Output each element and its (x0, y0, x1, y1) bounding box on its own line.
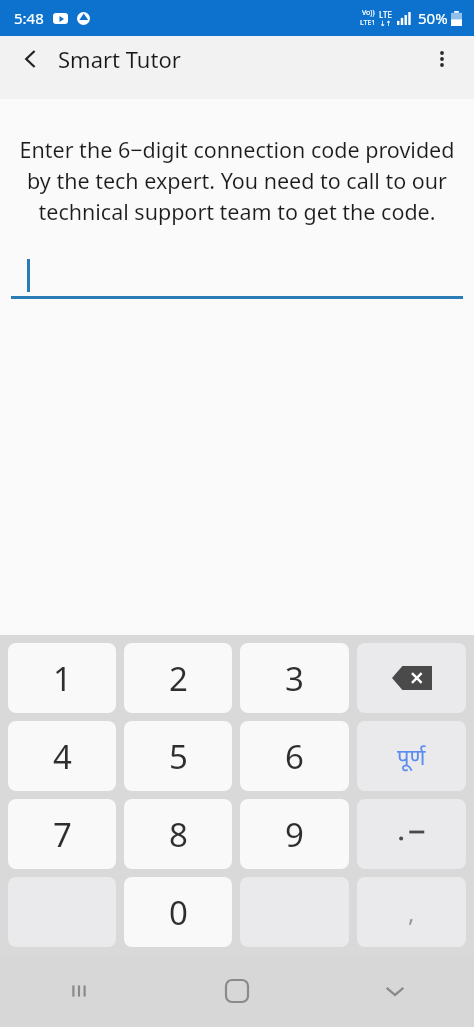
staticText: 1 (53, 656, 72, 701)
button[interactable] (11, 251, 463, 299)
staticText: 50% (418, 8, 448, 28)
button[interactable]: पूर्ण (357, 721, 466, 791)
staticText: LTE (379, 9, 392, 20)
staticText: LTE1 (360, 18, 376, 28)
staticText: ↓↑ (380, 20, 392, 28)
staticText: Vo)) (362, 8, 375, 18)
staticText: 5:48 (14, 8, 44, 28)
button[interactable]: 9 (240, 799, 349, 869)
staticText: पूर्ण (397, 741, 426, 771)
button[interactable]: More options (420, 37, 464, 81)
button[interactable]: Recent apps (0, 955, 158, 1027)
staticText: 4 (53, 734, 72, 779)
button[interactable]: Back (8, 36, 54, 82)
staticText: Enter the 6−digit connection code provid… (11, 135, 463, 227)
button[interactable]: 5 (124, 721, 232, 791)
staticText: 0 (169, 890, 188, 935)
staticText: 5 (169, 734, 188, 779)
button[interactable]: Hide keyboard (316, 955, 474, 1027)
staticText: 7 (53, 812, 72, 857)
staticText: 9 (285, 812, 304, 857)
button[interactable]: 1 (8, 643, 116, 713)
staticText: 8 (169, 812, 188, 857)
button[interactable]: 7 (8, 799, 116, 869)
button[interactable]: 3 (240, 643, 349, 713)
button[interactable]: 8 (124, 799, 232, 869)
button[interactable]: 0 (124, 877, 232, 947)
button[interactable]: 4 (8, 721, 116, 791)
button[interactable]: Backspace (357, 643, 466, 713)
staticText: 2 (169, 656, 188, 701)
button[interactable]: 2 (124, 643, 232, 713)
button[interactable]: , (357, 877, 466, 947)
button[interactable]: 6 (240, 721, 349, 791)
button[interactable]: Home (158, 955, 316, 1027)
button[interactable]: Dot dash (357, 799, 466, 869)
staticText: , (408, 896, 415, 929)
staticText: Smart Tutor (58, 44, 420, 74)
staticText: 3 (285, 656, 304, 701)
staticText: 6 (285, 734, 304, 779)
